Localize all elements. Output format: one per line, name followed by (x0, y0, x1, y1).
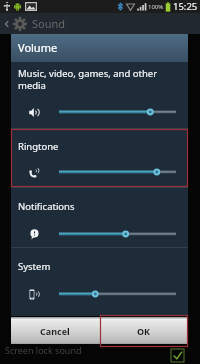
staticText: 15:25 (173, 0, 198, 13)
staticText: Cancel (40, 325, 70, 337)
staticText: Screen lock sound (5, 344, 82, 356)
other: Ringtone volume (29, 167, 40, 178)
button[interactable]: Music, video, games, and other media (11, 62, 188, 128)
button[interactable]: Notifications (11, 188, 188, 247)
button[interactable]: System (11, 248, 188, 307)
staticText: Ringtone (18, 140, 59, 153)
other: System volume (29, 289, 40, 300)
staticText: Volume (18, 40, 58, 55)
staticText: Sound (32, 16, 66, 31)
staticText: OK (137, 325, 151, 337)
staticText: 100% (148, 3, 164, 11)
staticText: Notifications (18, 200, 75, 213)
staticText: Music, video, games, and other media (18, 67, 158, 91)
button[interactable]: OK (99, 317, 188, 344)
other: Notification volume (29, 229, 40, 240)
staticText: System (18, 260, 51, 273)
button[interactable]: Cancel (11, 317, 99, 344)
button[interactable]: Ringtone (11, 129, 188, 187)
other: Media volume (29, 107, 40, 118)
